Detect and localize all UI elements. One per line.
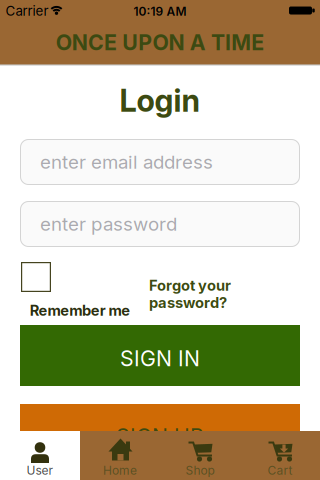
button[interactable]: enter password [20, 201, 300, 247]
staticText: Login [119, 82, 200, 119]
staticText: 10:19 AM [133, 4, 186, 19]
button[interactable]: Remember me [21, 262, 51, 292]
button[interactable]: SIGN UP [20, 404, 300, 465]
staticText: enter email address [40, 151, 213, 173]
staticText: Home [103, 463, 137, 478]
button[interactable]: Shop [160, 431, 240, 480]
staticText: enter password [40, 213, 177, 235]
staticText: SIGN IN [120, 346, 200, 371]
staticText: Cart [267, 463, 292, 478]
button[interactable]: User [0, 431, 80, 480]
button[interactable]: Home [80, 431, 160, 480]
staticText: Forgot your [149, 277, 231, 294]
staticText: Remember me [30, 302, 130, 319]
staticText: User [26, 463, 53, 478]
staticText: SIGN UP [116, 424, 204, 449]
staticText: Shop [185, 463, 214, 478]
button[interactable]: enter email address [20, 139, 300, 185]
staticText: Carrier [5, 3, 48, 19]
button[interactable]: Cart [240, 431, 320, 480]
button[interactable]: SIGN IN [20, 325, 300, 386]
staticText: password? [149, 294, 227, 311]
button[interactable]: Forgot your [149, 277, 231, 311]
staticText: ONCE UPON A TIME [56, 30, 264, 55]
